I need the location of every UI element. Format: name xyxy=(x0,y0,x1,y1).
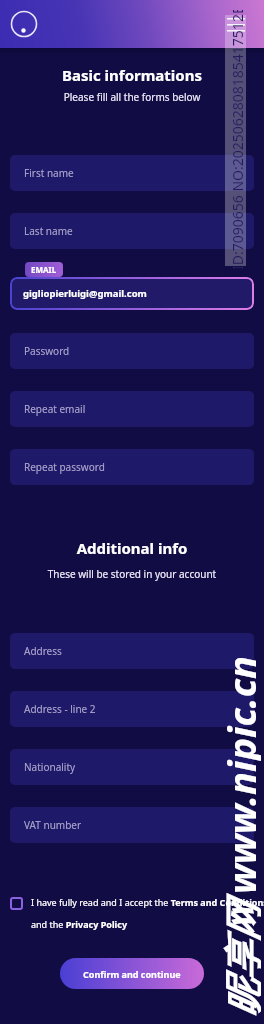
staticText: Repeat password xyxy=(24,460,105,474)
staticText: These will be stored in your account xyxy=(0,567,264,581)
staticText: Repeat email xyxy=(24,402,86,416)
staticText: I have fully read and I accept the Terms… xyxy=(31,896,264,908)
staticText: 昵享网 www.nipic.cn xyxy=(215,655,261,1018)
staticText: ID:7090656 NO:2025062808185417512B xyxy=(228,10,244,270)
staticText: Last name xyxy=(24,224,73,238)
staticText: VAT number xyxy=(24,818,82,832)
staticText: Confirm and continue xyxy=(83,968,181,980)
staticText: Nationality xyxy=(24,760,76,774)
staticText: gigliopierluigi@gmail.com xyxy=(23,287,147,300)
staticText: Please fill all the forms below xyxy=(0,90,264,104)
staticText: EMAIL xyxy=(31,264,57,275)
staticText: Basic informations xyxy=(0,65,264,85)
staticText: First name xyxy=(24,166,74,180)
staticText: Address xyxy=(24,644,62,658)
staticText: and the Privacy Policy xyxy=(31,918,128,930)
staticText: Address - line 2 xyxy=(24,702,96,716)
staticText: Additional info xyxy=(0,538,264,558)
staticText: Password xyxy=(24,344,70,358)
